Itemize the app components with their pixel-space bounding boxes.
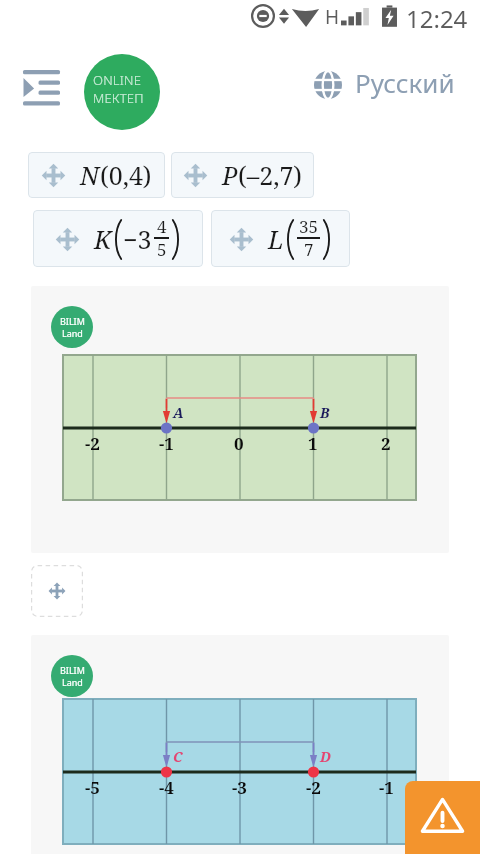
staticText: -1 bbox=[379, 776, 394, 799]
button[interactable]: L bbox=[211, 210, 350, 267]
staticText: 4 bbox=[157, 215, 167, 238]
staticText: (–2,7) bbox=[238, 158, 303, 192]
staticText: BILIM bbox=[60, 315, 85, 327]
staticText: -2 bbox=[85, 432, 100, 455]
staticText: -5 bbox=[85, 776, 100, 799]
staticText: МЕКТЕП bbox=[93, 89, 144, 107]
button[interactable]: Warning bbox=[405, 781, 480, 854]
staticText: −3 bbox=[123, 222, 152, 256]
staticText: (0,4) bbox=[100, 158, 152, 192]
staticText: 2 bbox=[381, 432, 391, 455]
staticText: B bbox=[320, 403, 330, 422]
staticText: N bbox=[80, 158, 100, 192]
staticText: P bbox=[222, 158, 238, 192]
staticText: D bbox=[320, 747, 331, 766]
staticText: 12:24 bbox=[406, 2, 468, 34]
button[interactable]: P bbox=[171, 152, 314, 198]
button[interactable]: K bbox=[33, 210, 203, 267]
staticText: A bbox=[173, 403, 184, 422]
staticText: BILIM bbox=[60, 664, 85, 676]
staticText: -1 bbox=[159, 432, 174, 455]
staticText: C bbox=[173, 747, 183, 766]
staticText: Русский bbox=[355, 65, 455, 100]
button[interactable]: Русский bbox=[309, 65, 455, 100]
staticText: Land bbox=[62, 327, 83, 339]
staticText: -2 bbox=[306, 776, 321, 799]
staticText: H bbox=[325, 4, 340, 30]
staticText: ONLINE bbox=[93, 71, 142, 89]
button[interactable]: Drop target bbox=[31, 565, 83, 617]
staticText: 7 bbox=[304, 238, 314, 261]
staticText: L bbox=[268, 222, 284, 256]
button[interactable]: N bbox=[28, 152, 165, 198]
staticText: 35 bbox=[299, 215, 319, 238]
button[interactable]: Menu bbox=[8, 56, 75, 120]
staticText: 5 bbox=[157, 238, 167, 261]
staticText: -4 bbox=[159, 776, 174, 799]
staticText: 1 bbox=[308, 432, 318, 455]
staticText: Land bbox=[62, 676, 83, 688]
staticText: K bbox=[94, 222, 112, 256]
staticText: -3 bbox=[232, 776, 247, 799]
staticText: 0 bbox=[234, 432, 244, 455]
button[interactable]: ONLINE bbox=[84, 54, 160, 130]
